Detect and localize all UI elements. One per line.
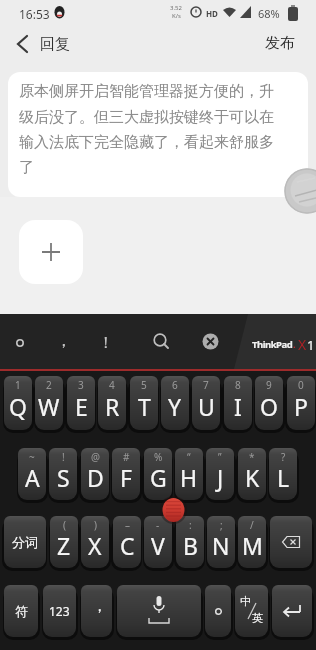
button[interactable]: 原本侧屏开启智能管理器挺方便的，升 级后没了。但三大虚拟按键终于可以在 输入法底… (8, 72, 308, 197)
button[interactable]: 4 (98, 376, 126, 430)
button[interactable]: @ (81, 448, 109, 500)
button[interactable]: 5 (130, 376, 158, 430)
staticText: HD (206, 8, 218, 19)
staticText: O (260, 391, 278, 422)
staticText: 3.52 (170, 4, 182, 12)
button[interactable]: 7 (192, 376, 220, 430)
staticText: . (293, 338, 296, 351)
button[interactable] (270, 516, 312, 568)
button[interactable]: - (144, 516, 172, 568)
button[interactable]: 9 (255, 376, 283, 430)
button[interactable]: ， (81, 585, 112, 637)
staticText: ~ (29, 450, 35, 464)
staticText: P (294, 391, 308, 422)
staticText: 16:53 (19, 6, 50, 22)
staticText: 9 (266, 378, 272, 392)
staticText: ， (92, 597, 107, 616)
button[interactable]: 0 (287, 376, 315, 430)
button[interactable]: 发布 (252, 28, 308, 58)
staticText: Z (57, 530, 71, 561)
button[interactable] (197, 328, 223, 354)
button[interactable] (8, 30, 36, 58)
button[interactable]: 123 (43, 585, 76, 637)
staticText: W (38, 391, 60, 422)
button[interactable]: 1 (4, 376, 32, 430)
button[interactable]: ！ (91, 326, 121, 360)
button[interactable] (117, 585, 201, 637)
button[interactable]: 中 (235, 585, 268, 637)
staticText: E (75, 391, 88, 422)
button[interactable]: ; (207, 516, 235, 568)
staticText: ThinkPad (252, 338, 293, 351)
button[interactable]: “ (175, 448, 203, 500)
staticText: 4 (109, 378, 115, 392)
button[interactable]: ” (206, 448, 234, 500)
staticText: K (245, 462, 260, 493)
staticText: Q (9, 391, 27, 422)
staticText: 发布 (265, 34, 295, 53)
staticText: M (242, 530, 263, 561)
button[interactable]: 2 (35, 376, 63, 430)
staticText: T (138, 391, 151, 422)
staticText: B (183, 530, 198, 561)
staticText: R (105, 391, 120, 422)
staticText: C (120, 530, 135, 561)
button[interactable]: 3 (67, 376, 95, 430)
button[interactable] (5, 326, 35, 360)
staticText: 中 (240, 594, 251, 608)
button[interactable]: # (112, 448, 140, 500)
button[interactable] (205, 585, 231, 637)
staticText: 0 (298, 378, 304, 392)
button[interactable]: ? (269, 448, 297, 500)
staticText: 123 (49, 603, 70, 619)
staticText: U (198, 391, 215, 422)
staticText: I (234, 391, 242, 422)
staticText: F (120, 462, 132, 493)
button[interactable]: % (144, 448, 172, 500)
staticText: A (25, 462, 40, 493)
staticText: X (88, 530, 102, 561)
staticText: # (123, 450, 130, 464)
button[interactable]: ~ (18, 448, 46, 500)
staticText: L (277, 462, 290, 493)
staticText: 分词 (12, 534, 38, 550)
staticText: - (156, 518, 160, 532)
staticText: S (57, 462, 70, 493)
staticText: 1 (15, 378, 21, 392)
button[interactable]: * (238, 448, 266, 500)
staticText: 5 (141, 378, 147, 392)
staticText: 英 (252, 611, 263, 625)
staticText: % (154, 450, 163, 464)
staticText: 7 (203, 378, 209, 392)
button[interactable] (148, 328, 174, 354)
staticText: Y (168, 391, 182, 422)
button[interactable]: / (238, 516, 266, 568)
staticText: ， (55, 330, 72, 351)
button[interactable]: 6 (161, 376, 189, 430)
button[interactable]: 8 (224, 376, 252, 430)
button[interactable]: ( (50, 516, 78, 568)
staticText: 符 (15, 603, 28, 619)
staticText: : (189, 518, 192, 532)
staticText: / (250, 518, 254, 532)
staticText: ) (94, 518, 97, 532)
button[interactable]: 符 (4, 585, 38, 637)
staticText: J (217, 462, 224, 493)
staticText: 3 (78, 378, 84, 392)
button[interactable] (272, 585, 312, 637)
staticText: * (249, 450, 255, 464)
staticText: ! (62, 450, 65, 464)
button[interactable]: ! (49, 448, 77, 500)
button[interactable]: ) (81, 516, 109, 568)
staticText: 6 (172, 378, 178, 392)
button[interactable]: ， (48, 326, 78, 360)
staticText: N (212, 530, 230, 561)
staticText: 原本侧屏开启智能管理器挺方便的，升 级后没了。但三大虚拟按键终于可以在 输入法底… (19, 82, 274, 176)
button[interactable] (19, 220, 83, 284)
button[interactable]: – (113, 516, 141, 568)
staticText: @ (91, 450, 100, 464)
staticText: – (125, 518, 130, 532)
button[interactable]: : (176, 516, 204, 568)
staticText: ? (281, 450, 286, 464)
button[interactable]: 分词 (4, 516, 46, 568)
